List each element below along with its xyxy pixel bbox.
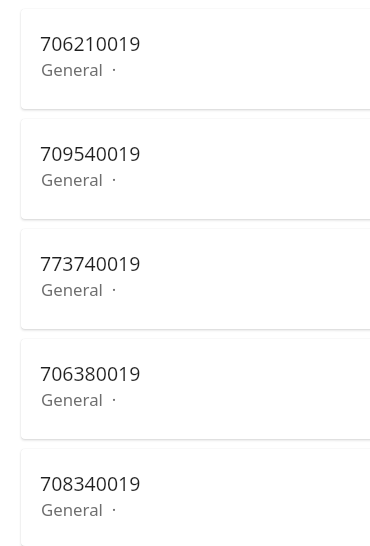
staticText: 773740019 (40, 250, 141, 277)
button[interactable]: 773740019 (21, 229, 370, 329)
button[interactable]: 706210019 (21, 9, 370, 109)
staticText: General · (41, 388, 117, 411)
staticText: General · (41, 278, 117, 301)
staticText: 708340019 (40, 470, 141, 497)
staticText: 706210019 (40, 30, 141, 57)
staticText: 706380019 (40, 360, 141, 387)
staticText: 709540019 (40, 140, 141, 167)
button[interactable]: 708340019 (21, 449, 370, 546)
staticText: General · (41, 58, 117, 81)
staticText: General · (41, 498, 117, 521)
button[interactable]: 709540019 (21, 119, 370, 219)
button[interactable]: 706380019 (21, 339, 370, 439)
staticText: General · (41, 168, 117, 191)
